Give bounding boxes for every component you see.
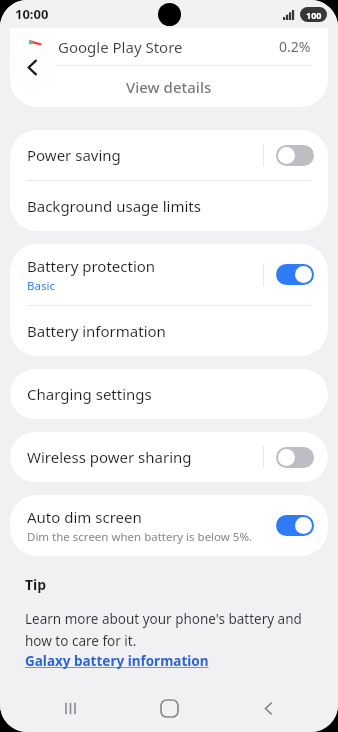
button[interactable]: Battery information <box>10 306 328 356</box>
staticText: Background usage limits <box>27 196 201 216</box>
button[interactable]: On <box>276 515 314 536</box>
staticText: Google Play Store <box>58 37 183 57</box>
button[interactable]: Recent apps <box>41 684 99 732</box>
staticText: Auto dim screen <box>27 507 142 527</box>
staticText: Charging settings <box>27 384 152 404</box>
button[interactable]: Back <box>239 684 297 732</box>
staticText: View details <box>126 77 212 97</box>
staticText: Galaxy battery information <box>25 652 209 670</box>
staticText: Dim the screen when battery is below 5%. <box>27 529 253 545</box>
button[interactable]: Galaxy battery information <box>25 652 209 670</box>
staticText: Learn more about your phone's battery an… <box>25 610 313 650</box>
staticText: 0.2% <box>279 37 311 56</box>
button[interactable]: View details <box>10 66 328 107</box>
button[interactable]: Background usage limits <box>10 181 328 231</box>
staticText: 100 <box>306 9 322 21</box>
button[interactable]: Power saving <box>10 130 328 180</box>
button[interactable]: On <box>276 264 314 285</box>
staticText: Battery protection <box>27 256 156 276</box>
button[interactable]: Charging settings <box>10 369 328 419</box>
button[interactable]: Wireless power sharing <box>10 432 328 482</box>
button[interactable]: Off <box>276 145 314 166</box>
button[interactable]: Navigate up <box>9 44 56 91</box>
staticText: Basic <box>27 278 55 294</box>
staticText: Power saving <box>27 145 121 165</box>
button[interactable]: Home <box>140 684 198 732</box>
staticText: Wireless power sharing <box>27 447 192 467</box>
staticText: 10:00 <box>15 5 49 23</box>
button[interactable]: Battery protection <box>10 244 328 305</box>
staticText: Tip <box>25 575 47 594</box>
button[interactable]: Auto dim screen <box>10 495 328 556</box>
staticText: Battery information <box>27 321 166 341</box>
button[interactable]: Google Play Store <box>10 28 328 65</box>
button[interactable]: Off <box>276 447 314 468</box>
